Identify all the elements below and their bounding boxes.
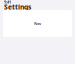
- staticText: Settings: [4, 3, 31, 11]
- staticText: Row: [34, 21, 41, 26]
- staticText: 9:41: [4, 0, 11, 5]
